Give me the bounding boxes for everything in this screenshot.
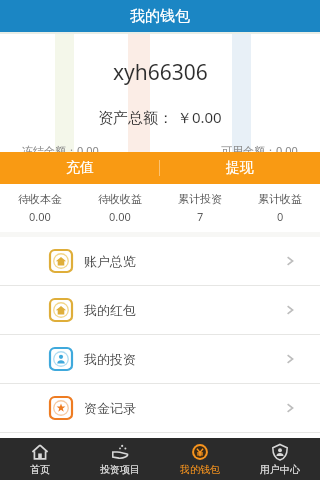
button[interactable]: 我的投资 xyxy=(0,335,320,383)
staticText: 0.00 xyxy=(29,209,51,224)
staticText: 资金记录 xyxy=(84,400,136,416)
button[interactable]: 充值 xyxy=(0,152,159,184)
button[interactable]: 首页 xyxy=(0,438,80,480)
staticText: 我的投资 xyxy=(84,351,136,367)
staticText: 账户总览 xyxy=(84,253,136,269)
staticText: 我的红包 xyxy=(84,302,136,318)
button[interactable]: 待收收益 xyxy=(80,184,160,232)
button[interactable]: 累计投资 xyxy=(160,184,240,232)
staticText: 7 xyxy=(197,209,204,224)
button[interactable]: 我的红包 xyxy=(0,286,320,334)
staticText: 用户中心 xyxy=(260,463,300,476)
button[interactable]: 资金记录 xyxy=(0,384,320,432)
staticText: 我的钱包 xyxy=(130,7,190,26)
staticText: 累计收益 xyxy=(258,192,302,206)
staticText: 提现 xyxy=(226,159,254,177)
button[interactable]: 用户中心 xyxy=(240,438,320,480)
staticText: 可用金额：0.00 xyxy=(221,143,298,152)
staticText: xyh66306 xyxy=(113,58,208,87)
staticText: 资产总额： ￥0.00 xyxy=(98,107,222,127)
staticText: 待收本金 xyxy=(18,192,62,206)
staticText: 投资项目 xyxy=(100,463,140,476)
staticText: 充值 xyxy=(66,159,94,177)
button[interactable]: 我的钱包 xyxy=(160,438,240,480)
button[interactable]: 累计收益 xyxy=(240,184,320,232)
staticText: 我的钱包 xyxy=(180,463,220,476)
button[interactable]: 投资项目 xyxy=(80,438,160,480)
button[interactable]: 提现 xyxy=(160,152,320,184)
staticText: 待收收益 xyxy=(98,192,142,206)
staticText: 累计投资 xyxy=(178,192,222,206)
staticText: 0.00 xyxy=(109,209,131,224)
button[interactable]: 账户总览 xyxy=(0,237,320,285)
staticText: 0 xyxy=(277,209,284,224)
button[interactable]: 待收本金 xyxy=(0,184,80,232)
staticText: 首页 xyxy=(30,463,50,476)
staticText: 冻结金额：0.00 xyxy=(22,143,99,152)
